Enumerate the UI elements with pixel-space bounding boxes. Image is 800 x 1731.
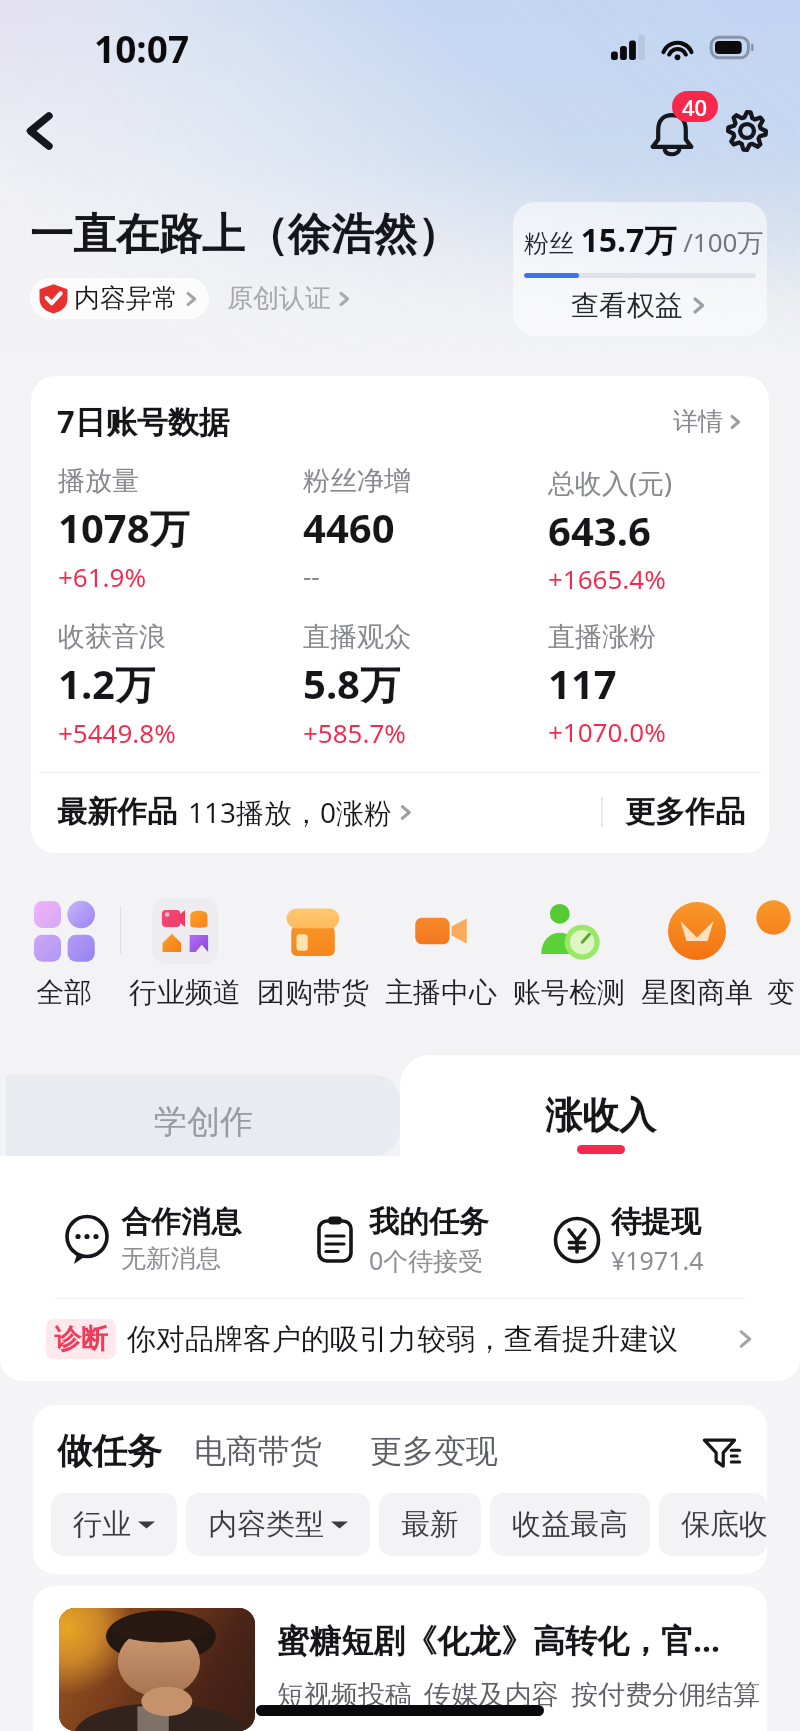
staticText: 待提现 (611, 1203, 701, 1241)
staticText: 117 (548, 656, 617, 710)
staticText: 合作消息 (121, 1203, 241, 1241)
button[interactable]: 我的任务 (310, 1203, 552, 1277)
button[interactable]: 更多作品 (625, 793, 745, 831)
staticText: 直播观众 (303, 620, 411, 654)
staticText: 主播中心 (385, 975, 497, 1010)
staticText: 账号检测 (513, 975, 625, 1010)
staticText: 4460 (303, 500, 395, 554)
button[interactable]: 变 (761, 898, 800, 1010)
button[interactable]: 行业频道 (121, 898, 249, 1010)
staticText: 保底收入 (681, 1506, 745, 1543)
staticText: 总收入(元) (548, 464, 673, 501)
button[interactable]: Back (12, 103, 68, 159)
staticText: 全部 (36, 975, 92, 1010)
staticText: 内容异常 (74, 282, 178, 315)
button[interactable]: 收益最高 (490, 1493, 650, 1556)
button[interactable]: 原创认证 (227, 282, 354, 315)
button[interactable]: Filter (701, 1430, 743, 1472)
staticText: +61.9% (58, 559, 147, 594)
staticText: 我的任务 (369, 1203, 489, 1241)
staticText: 收获音浪 (58, 620, 166, 654)
staticText: ¥1971.4 (611, 1243, 704, 1277)
button[interactable]: 合作消息 (62, 1203, 310, 1274)
button[interactable]: 内容类型 (186, 1493, 370, 1556)
staticText: 1.2万 (58, 656, 155, 711)
staticText: 直播涨粉 (548, 620, 656, 654)
button[interactable]: 内容异常 (30, 278, 209, 319)
button[interactable]: 最新 (379, 1493, 481, 1556)
staticText: +585.7% (303, 715, 406, 750)
button[interactable]: 保底收入 (659, 1493, 767, 1556)
staticText: 变 (767, 975, 795, 1010)
button[interactable]: 主播中心 (377, 898, 505, 1010)
staticText: 最新作品 (57, 793, 177, 831)
staticText: 行业频道 (129, 975, 241, 1010)
staticText: 1078万 (58, 500, 190, 555)
button[interactable]: 详情 (673, 406, 745, 437)
staticText: 详情 (673, 406, 723, 437)
staticText: +1665.4% (548, 561, 666, 596)
button[interactable]: 团购带货 (249, 898, 377, 1010)
staticText: 行业 (73, 1506, 131, 1543)
staticText: 5.8万 (303, 656, 400, 711)
staticText: 113播放，0涨粉 (188, 793, 393, 831)
button[interactable]: 学创作 (6, 1075, 400, 1156)
button[interactable]: 最新作品 (57, 793, 416, 831)
staticText: 原创认证 (227, 282, 331, 315)
button[interactable]: 行业 (51, 1493, 177, 1556)
staticText: 粉丝净增 (303, 464, 411, 498)
staticText: 传媒及内容 (424, 1678, 559, 1712)
staticText: +5449.8% (58, 715, 176, 750)
button[interactable]: 账号检测 (505, 898, 633, 1010)
button[interactable]: Settings (716, 100, 778, 162)
staticText: 无新消息 (121, 1243, 221, 1274)
staticText: 内容类型 (208, 1506, 324, 1543)
staticText: +1070.0% (548, 714, 666, 749)
button[interactable]: 粉丝 15.7万 /100万 (513, 202, 767, 336)
staticText: 粉丝 15.7万 /100万 (524, 218, 756, 262)
staticText: 按付费分佣结算 (571, 1678, 760, 1712)
staticText: 学创作 (154, 1101, 253, 1143)
staticText: 星图商单 (641, 975, 753, 1010)
button[interactable]: 诊断 (0, 1299, 800, 1381)
button[interactable]: 电商带货 (194, 1431, 322, 1471)
button[interactable]: 蜜糖短剧《化龙》高转化，官... (33, 1586, 767, 1731)
staticText: 短视频投稿 (277, 1678, 412, 1712)
staticText: 播放量 (58, 464, 139, 498)
staticText: 诊断 (54, 1322, 108, 1356)
staticText: 收益最高 (512, 1506, 628, 1543)
staticText: 查看权益 (571, 288, 683, 323)
button[interactable]: 做任务 (57, 1429, 162, 1473)
staticText: 蜜糖短剧《化龙》高转化，官... (277, 1618, 720, 1662)
staticText: 最新 (401, 1506, 459, 1543)
staticText: 你对品牌客户的吸引力较弱，查看提升建议 (127, 1321, 678, 1358)
staticText: 40 (682, 92, 708, 122)
staticText: 团购带货 (257, 975, 369, 1010)
staticText: 643.6 (548, 503, 651, 557)
staticText: 一直在路上（徐浩然） (30, 208, 460, 262)
staticText: 10:07 (94, 23, 190, 73)
button[interactable]: 全部 (8, 898, 120, 1010)
button[interactable]: 更多变现 (370, 1431, 498, 1471)
button[interactable]: Notifications (640, 95, 712, 167)
staticText: -- (303, 558, 320, 593)
staticText: 7日账号数据 (57, 400, 230, 442)
button[interactable]: 星图商单 (633, 898, 761, 1010)
button[interactable]: 涨收入 (400, 1055, 800, 1156)
staticText: 涨收入 (545, 1092, 656, 1139)
staticText: 0个待接受 (369, 1243, 484, 1277)
button[interactable]: 待提现 (552, 1203, 752, 1277)
